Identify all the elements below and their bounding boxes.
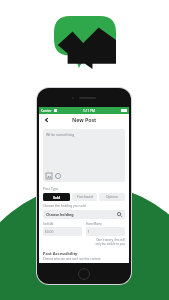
button[interactable]: Write something [43,129,125,182]
button[interactable]: 1 [86,227,125,236]
staticText: Opinion [106,195,118,199]
staticText: Choose holding [46,212,74,217]
button[interactable]: Add emoji [55,173,61,179]
button[interactable]: Purchased [72,193,97,201]
staticText: Carrier [41,109,52,113]
staticText: 1 [86,229,90,234]
button[interactable]: Opinion [99,193,125,201]
staticText: New Post [72,116,97,123]
button[interactable]: $0.00 [43,227,82,236]
staticText: Choose who can and can't see this conten… [43,257,101,261]
button[interactable]: Sold [43,193,70,201]
staticText: Choose the holding you sold [43,204,86,208]
staticText: $0.00 [43,229,54,234]
staticText: Write something [46,132,75,137]
staticText: Sold [53,195,61,200]
button[interactable]: Add photo [46,173,52,179]
staticText: How Many [86,222,102,226]
button[interactable]: Back [42,115,51,124]
staticText: Don't worry, this will only be visible t… [86,238,125,246]
staticText: Sold At [43,222,54,226]
staticText: Post Accessibility [43,251,78,256]
staticText: Purchased [77,195,93,199]
staticText: Post Type [43,186,59,191]
staticText: 1:11 PM [83,109,95,113]
button[interactable]: Choose holding [46,210,122,219]
